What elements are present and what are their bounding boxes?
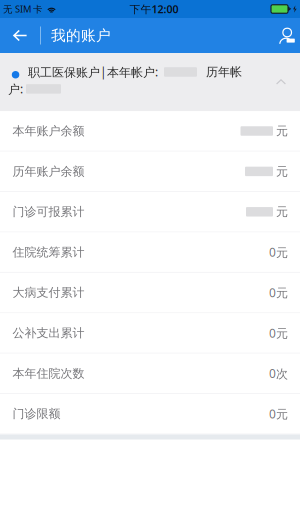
staticText: 职工医保账户|本年帐户: — [28, 64, 158, 80]
button[interactable]: 门诊限额 — [0, 394, 300, 434]
staticText: 历年账户余额 — [12, 164, 84, 179]
staticText: 0元 — [269, 406, 288, 422]
staticText: 0元 — [269, 285, 288, 300]
button[interactable]: 公补支出累计 — [0, 313, 300, 354]
staticText: 户: — [8, 81, 23, 97]
button[interactable]: 门诊可报累计 — [0, 192, 300, 232]
button[interactable]: 返回 — [6, 18, 34, 53]
staticText: 元 — [276, 124, 288, 138]
staticText: 本年住院次数 — [12, 366, 84, 381]
button[interactable]: 本年账户余额 — [0, 111, 300, 152]
staticText: 住院统筹累计 — [12, 245, 84, 259]
staticText: 门诊限额 — [12, 406, 60, 421]
staticText: 下午12:00 — [129, 2, 178, 16]
button[interactable]: 住院统筹累计 — [0, 232, 300, 273]
staticText: 历年帐 — [206, 65, 242, 79]
button[interactable]: 职工医保账户|本年帐户: — [0, 53, 300, 111]
staticText: 我的账户 — [51, 26, 111, 44]
staticText: 元 — [276, 164, 288, 179]
staticText: 本年账户余额 — [12, 124, 84, 138]
staticText: 无 SIM 卡 — [3, 3, 42, 15]
button[interactable]: 本年住院次数 — [0, 354, 300, 394]
staticText: 0元 — [269, 244, 288, 260]
staticText: 0次 — [269, 365, 288, 381]
button[interactable]: 个人中心 — [272, 18, 300, 53]
staticText: 大病支付累计 — [12, 285, 84, 300]
staticText: 公补支出累计 — [12, 326, 84, 340]
staticText: 门诊可报累计 — [12, 204, 84, 219]
button[interactable]: 历年账户余额 — [0, 152, 300, 192]
button[interactable]: 大病支付累计 — [0, 273, 300, 313]
staticText: 0元 — [269, 325, 288, 341]
staticText: 元 — [276, 204, 288, 219]
